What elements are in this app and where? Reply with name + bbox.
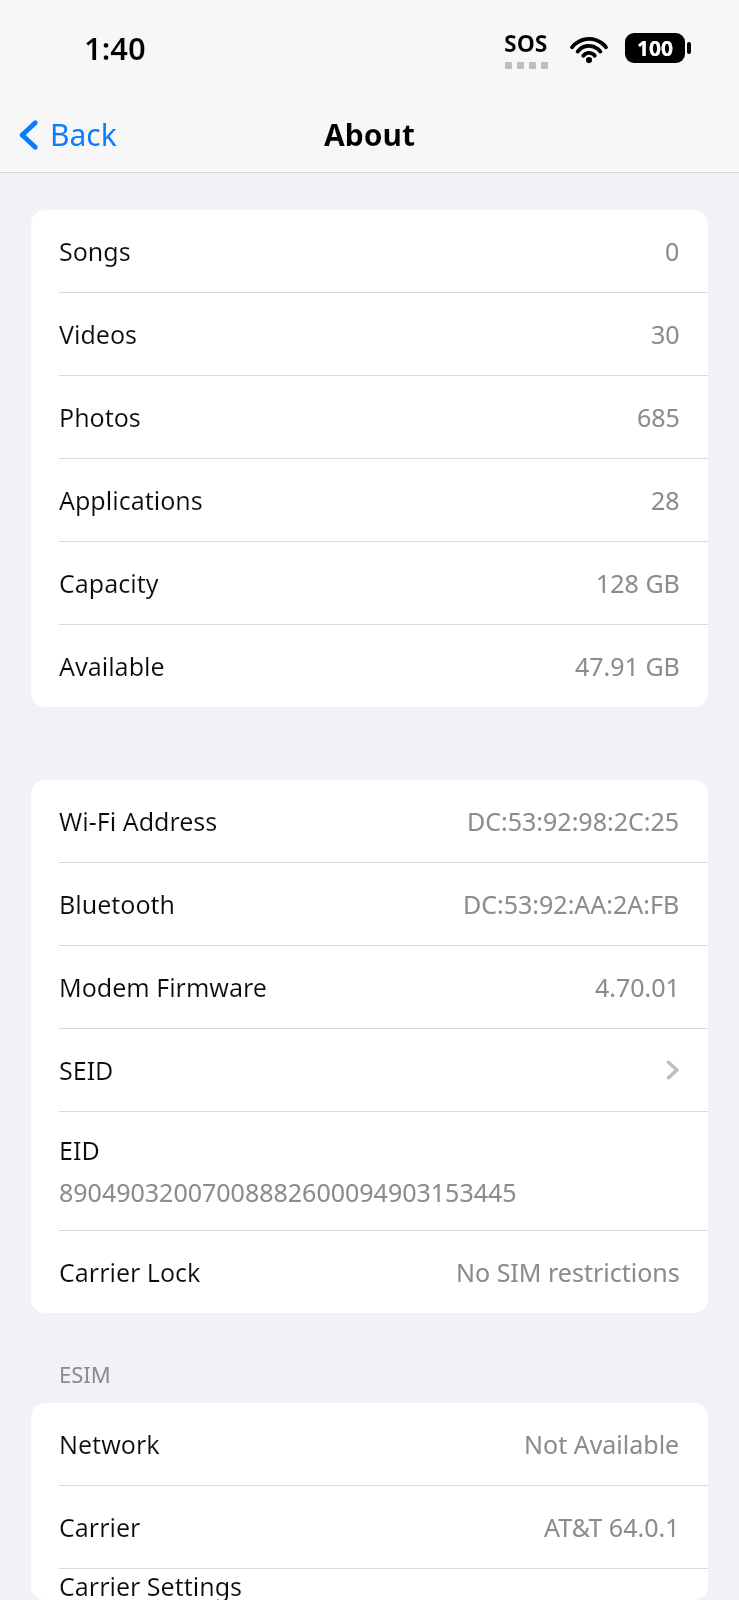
staticText: Capacity bbox=[59, 566, 159, 600]
staticText: About bbox=[324, 114, 415, 155]
staticText: 47.91 GB bbox=[575, 649, 680, 683]
staticText: Carrier bbox=[59, 1510, 141, 1544]
button[interactable]: Photos bbox=[31, 376, 708, 459]
staticText: SOS bbox=[504, 27, 548, 58]
staticText: Not Available bbox=[524, 1427, 680, 1461]
staticText: Bluetooth bbox=[59, 887, 176, 921]
staticText: AT&T 64.0.1 bbox=[544, 1510, 680, 1544]
staticText: SEID bbox=[59, 1053, 114, 1087]
staticText: Carrier Settings bbox=[59, 1569, 242, 1600]
staticText: Carrier Lock bbox=[59, 1255, 201, 1289]
button[interactable]: EID bbox=[31, 1112, 708, 1231]
button[interactable]: Bluetooth bbox=[31, 863, 708, 946]
button[interactable]: Songs bbox=[31, 210, 708, 293]
button[interactable]: Modem Firmware bbox=[31, 946, 708, 1029]
staticText: 1:40 bbox=[84, 27, 146, 69]
staticText: EID bbox=[59, 1133, 100, 1167]
staticText: Wi-Fi Address bbox=[59, 804, 218, 838]
staticText: Photos bbox=[59, 400, 141, 434]
staticText: No SIM restrictions bbox=[456, 1255, 680, 1289]
staticText: 685 bbox=[637, 400, 680, 434]
staticText: 0 bbox=[665, 234, 680, 268]
staticText: 128 GB bbox=[596, 566, 680, 600]
button[interactable]: Back bbox=[10, 108, 131, 161]
staticText: Applications bbox=[59, 483, 203, 517]
staticText: 28 bbox=[651, 483, 680, 517]
staticText: Modem Firmware bbox=[59, 970, 267, 1004]
button[interactable]: Carrier bbox=[31, 1486, 708, 1569]
staticText: 4.70.01 bbox=[595, 970, 680, 1004]
button[interactable]: Available bbox=[31, 625, 708, 707]
staticText: 89049032007008882600094903153445 bbox=[59, 1175, 517, 1209]
staticText: 100 bbox=[637, 34, 674, 63]
staticText: ESIM bbox=[59, 1359, 111, 1389]
staticText: Network bbox=[59, 1427, 160, 1461]
staticText: Songs bbox=[59, 234, 131, 268]
button[interactable]: Videos bbox=[31, 293, 708, 376]
button[interactable]: Wi-Fi Address bbox=[31, 780, 708, 863]
button[interactable]: SEID bbox=[31, 1029, 708, 1112]
staticText: Videos bbox=[59, 317, 138, 351]
staticText: 30 bbox=[651, 317, 680, 351]
staticText: DC:53:92:98:2C:25 bbox=[467, 804, 680, 838]
other: Open SEID bbox=[664, 1057, 680, 1083]
button[interactable]: Capacity bbox=[31, 542, 708, 625]
staticText: Available bbox=[59, 649, 165, 683]
button[interactable]: Carrier Lock bbox=[31, 1231, 708, 1313]
staticText: Back bbox=[50, 114, 117, 155]
staticText: DC:53:92:AA:2A:FB bbox=[463, 887, 680, 921]
button[interactable]: Network bbox=[31, 1403, 708, 1486]
button[interactable]: Applications bbox=[31, 459, 708, 542]
button[interactable]: Carrier Settings bbox=[31, 1569, 708, 1600]
